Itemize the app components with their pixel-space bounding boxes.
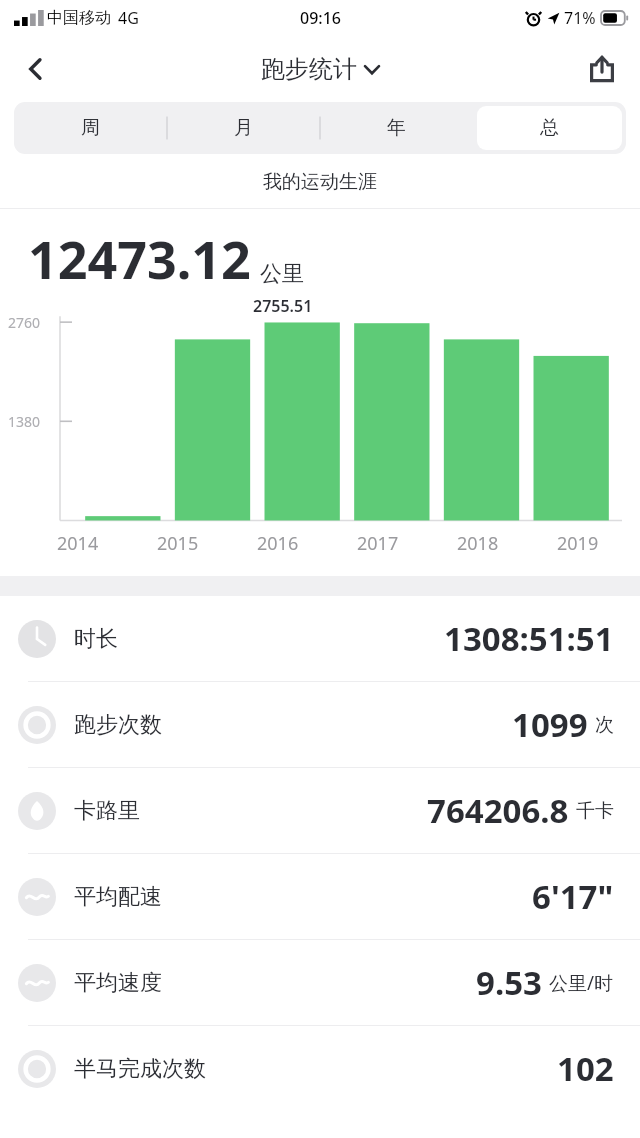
staticText: 764206.8: [427, 788, 569, 833]
staticText: 9.53: [476, 960, 542, 1005]
staticText: 2015: [157, 531, 199, 556]
staticText: 102: [557, 1046, 614, 1091]
staticText: 年: [387, 116, 406, 140]
staticText: 月: [234, 116, 253, 140]
button[interactable]: Back: [10, 43, 62, 95]
button[interactable]: 时长: [0, 596, 640, 681]
staticText: 4G: [118, 7, 139, 29]
staticText: 平均配速: [74, 883, 162, 911]
staticText: 2017: [357, 531, 399, 556]
button[interactable]: 周: [18, 106, 163, 150]
staticText: 2016: [257, 531, 299, 556]
staticText: 2014: [57, 531, 99, 556]
button[interactable]: 半马完成次数: [0, 1026, 640, 1111]
button[interactable]: 平均速度: [0, 940, 640, 1025]
button[interactable]: 卡路里: [0, 768, 640, 853]
staticText: 2019: [557, 531, 599, 556]
staticText: 2018: [457, 531, 499, 556]
staticText: 6'17": [532, 874, 614, 919]
button[interactable]: 月: [171, 106, 316, 150]
staticText: 12473.12: [28, 223, 251, 294]
staticText: 中国移动: [47, 8, 111, 28]
button[interactable]: 年: [324, 106, 469, 150]
staticText: 71%: [564, 7, 596, 29]
staticText: 总: [540, 116, 559, 140]
button[interactable]: 平均配速: [0, 854, 640, 939]
button[interactable]: Share: [576, 43, 628, 95]
staticText: 公里/时: [549, 970, 614, 996]
staticText: 跑步次数: [74, 711, 162, 739]
button[interactable]: 总: [477, 106, 622, 150]
staticText: 09:16: [300, 7, 341, 29]
button[interactable]: 跑步次数: [0, 682, 640, 767]
staticText: 周: [81, 116, 100, 140]
staticText: 半马完成次数: [74, 1055, 206, 1083]
staticText: 时长: [74, 625, 118, 653]
staticText: 平均速度: [74, 969, 162, 997]
staticText: 1099: [512, 702, 588, 747]
staticText: 公里: [260, 260, 304, 288]
staticText: 2755.51: [253, 295, 313, 317]
staticText: 次: [595, 713, 614, 737]
staticText: 我的运动生涯: [263, 170, 377, 194]
staticText: 跑步统计: [261, 54, 357, 84]
staticText: 卡路里: [74, 797, 140, 825]
staticText: 2760: [8, 313, 41, 332]
staticText: 千卡: [576, 799, 614, 823]
staticText: 1380: [8, 412, 41, 431]
button[interactable]: 跑步统计: [261, 54, 379, 84]
staticText: 1308:51:51: [444, 616, 614, 661]
